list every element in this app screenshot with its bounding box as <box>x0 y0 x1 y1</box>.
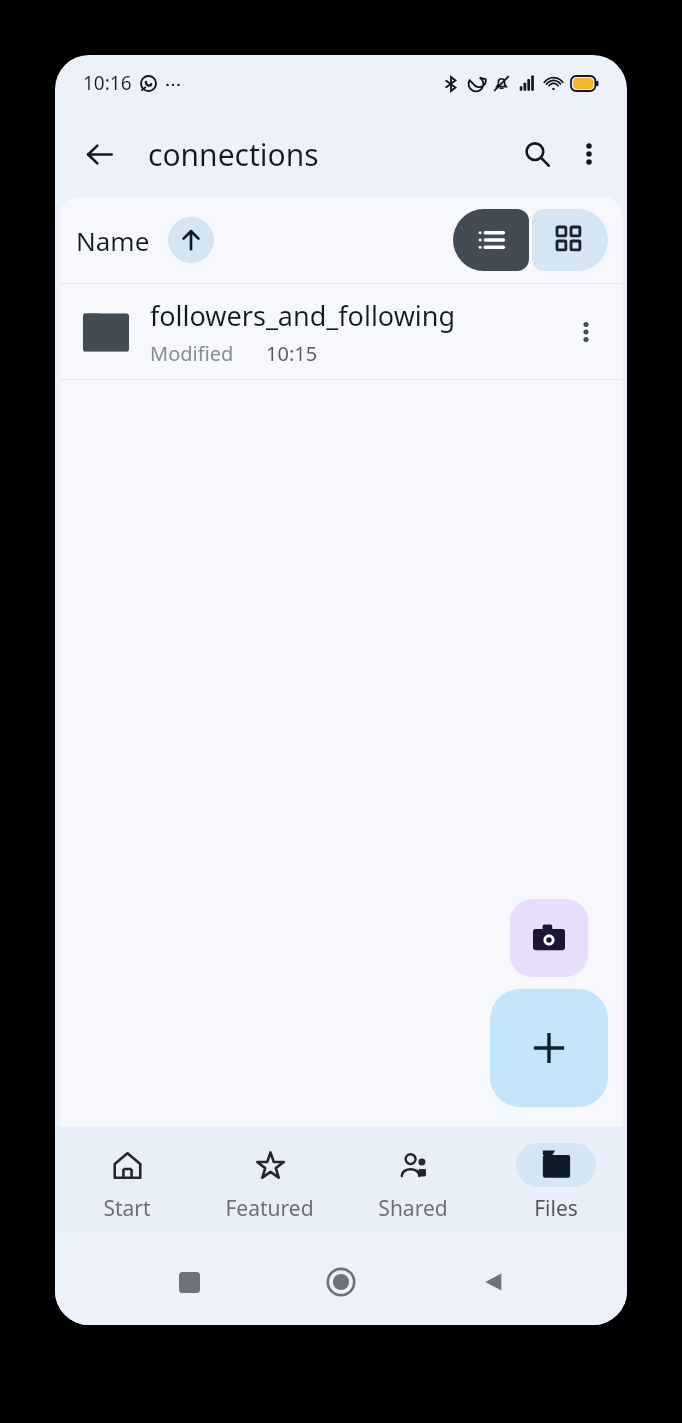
button[interactable]: Name <box>70 213 220 267</box>
staticText: 10:16 <box>83 70 132 96</box>
button[interactable]: Create <box>490 989 608 1107</box>
staticText: connections <box>148 134 319 175</box>
button[interactable]: followers_and_following <box>60 284 622 379</box>
staticText: Start <box>103 1194 151 1223</box>
button[interactable]: Files <box>484 1127 627 1239</box>
staticText: Name <box>76 223 150 258</box>
button[interactable]: Item options <box>560 306 612 358</box>
button[interactable]: Start <box>55 1127 198 1239</box>
staticText: Files <box>534 1194 578 1223</box>
staticText: Featured <box>225 1194 314 1223</box>
button[interactable]: Grid view <box>532 209 608 271</box>
staticText: Shared <box>378 1194 448 1223</box>
button[interactable]: Search <box>511 128 563 180</box>
button[interactable]: Shared <box>341 1127 484 1239</box>
button[interactable]: Home <box>314 1255 368 1309</box>
staticText: Modified <box>150 340 234 367</box>
button[interactable]: Back <box>71 126 127 182</box>
button[interactable]: Featured <box>198 1127 341 1239</box>
staticText: 10:15 <box>266 340 318 367</box>
button[interactable]: List view <box>453 209 529 271</box>
staticText: followers_and_following <box>150 297 456 334</box>
button[interactable]: Take photo <box>510 899 588 977</box>
button[interactable]: More options <box>563 128 615 180</box>
button[interactable]: Back <box>466 1255 520 1309</box>
button[interactable]: Recents <box>162 1255 216 1309</box>
